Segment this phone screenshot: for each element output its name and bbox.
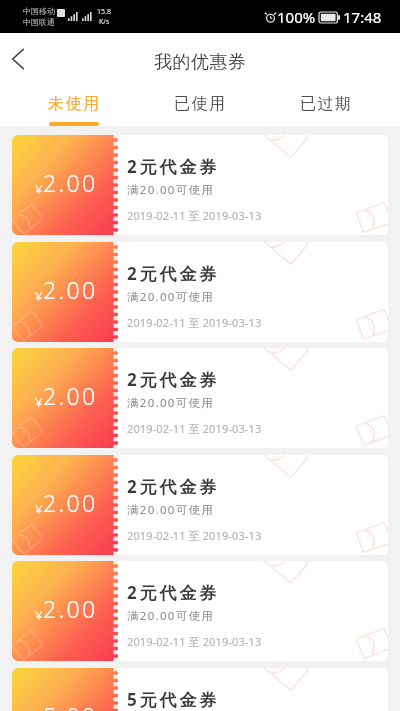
staticText: 满20.00可使用 bbox=[127, 608, 215, 624]
button[interactable]: ¥ bbox=[12, 242, 388, 342]
staticText: ¥ bbox=[35, 180, 43, 198]
staticText: 满20.00可使用 bbox=[127, 289, 215, 305]
button[interactable]: 已使用 bbox=[137, 86, 263, 126]
staticText: 2.00 bbox=[43, 274, 98, 305]
staticText: 满20.00可使用 bbox=[127, 395, 215, 411]
button[interactable]: 已过期 bbox=[263, 86, 389, 126]
staticText: 2.00 bbox=[43, 167, 98, 198]
staticText: 2元代金券 bbox=[127, 581, 220, 604]
button[interactable]: Back bbox=[0, 37, 42, 80]
staticText: 2元代金券 bbox=[127, 475, 220, 498]
button[interactable]: ¥ bbox=[12, 561, 388, 661]
staticText: ¥ bbox=[35, 393, 43, 411]
button[interactable]: ¥ bbox=[12, 455, 388, 555]
staticText: ¥ bbox=[35, 287, 43, 305]
staticText: 2元代金券 bbox=[127, 262, 220, 285]
staticText: 2.00 bbox=[43, 593, 98, 624]
button[interactable]: ¥ bbox=[12, 668, 388, 711]
staticText: 2019-02-11 至 2019-03-13 bbox=[127, 634, 262, 649]
staticText: 5元代金券 bbox=[127, 688, 220, 711]
staticText: 中国移动 bbox=[23, 6, 55, 16]
staticText: 5.00 bbox=[43, 700, 98, 711]
button[interactable]: ¥ bbox=[12, 348, 388, 448]
staticText: ¥ bbox=[35, 606, 43, 624]
staticText: 17:48 bbox=[343, 7, 382, 27]
staticText: 未使用 bbox=[48, 94, 101, 114]
staticText: 已使用 bbox=[174, 94, 227, 114]
staticText: 已过期 bbox=[300, 94, 353, 114]
staticText: 2元代金券 bbox=[127, 155, 220, 178]
staticText: 2019-02-11 至 2019-03-13 bbox=[127, 528, 262, 543]
staticText: K/s bbox=[99, 17, 110, 27]
staticText: 2.00 bbox=[43, 487, 98, 518]
staticText: 中国联通 bbox=[23, 17, 55, 27]
staticText: 15.8 bbox=[97, 7, 111, 17]
button[interactable]: ¥ bbox=[12, 135, 388, 235]
staticText: 2019-02-11 至 2019-03-13 bbox=[127, 421, 262, 436]
staticText: 2元代金券 bbox=[127, 368, 220, 391]
staticText: 2019-02-11 至 2019-03-13 bbox=[127, 208, 262, 223]
staticText: 满20.00可使用 bbox=[127, 502, 215, 518]
staticText: 我的优惠券 bbox=[154, 51, 246, 74]
staticText: 100% bbox=[277, 7, 316, 27]
staticText: 2.00 bbox=[43, 380, 98, 411]
button[interactable]: 未使用 bbox=[11, 86, 137, 126]
staticText: 满20.00可使用 bbox=[127, 182, 215, 198]
staticText: ¥ bbox=[35, 500, 43, 518]
staticText: 2019-02-11 至 2019-03-13 bbox=[127, 315, 262, 330]
